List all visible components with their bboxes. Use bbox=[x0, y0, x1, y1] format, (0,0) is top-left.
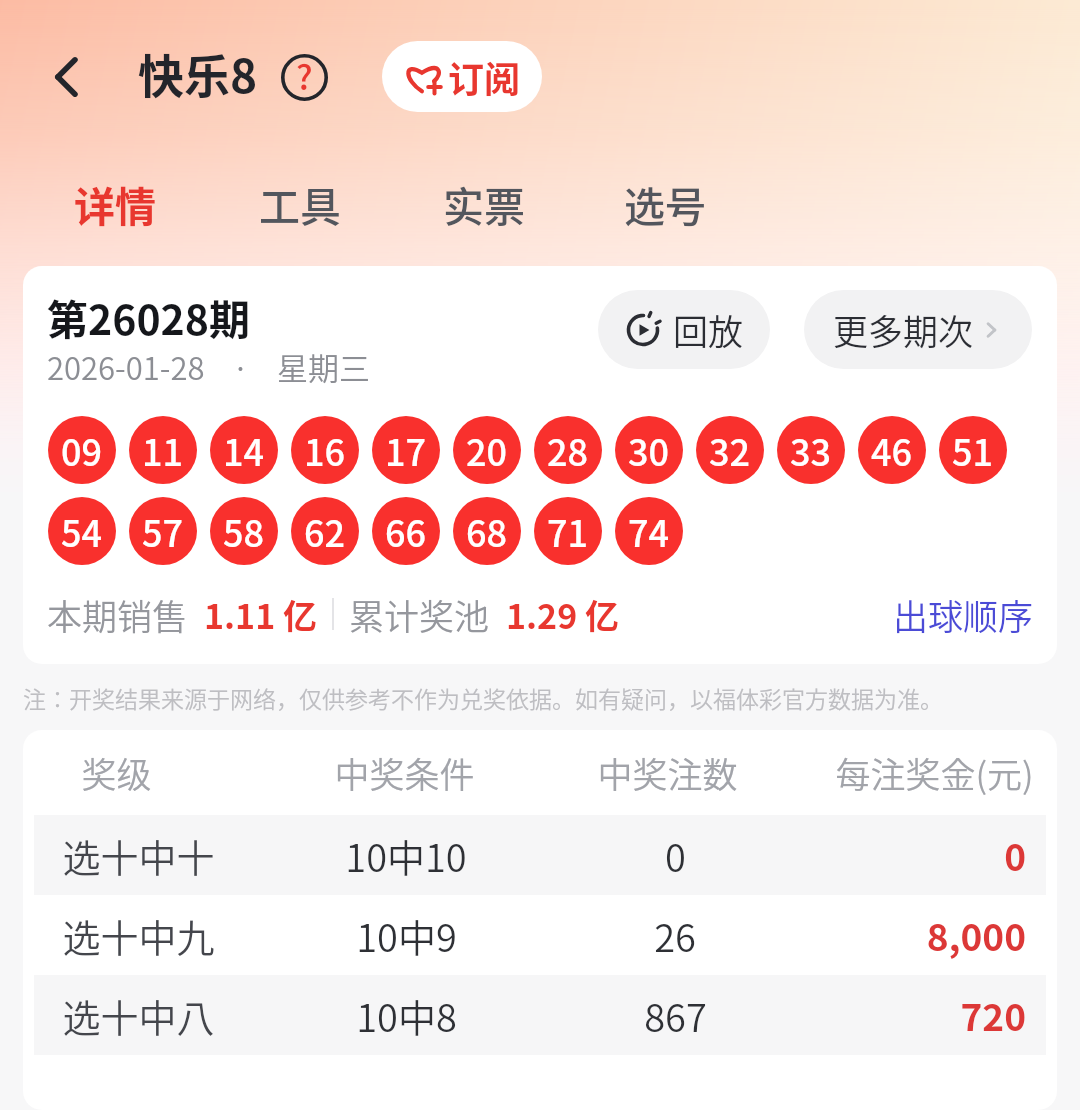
staticText: 09 bbox=[61, 424, 103, 476]
button[interactable]: 更多期次 bbox=[804, 290, 1032, 369]
staticText: 68 bbox=[466, 505, 508, 557]
staticText: 11 bbox=[142, 424, 184, 476]
staticText: 1.29 亿 bbox=[506, 590, 619, 639]
button[interactable]: 71 bbox=[534, 497, 602, 565]
button[interactable]: 54 bbox=[48, 497, 116, 565]
staticText: 57 bbox=[142, 505, 184, 557]
staticText: 66 bbox=[385, 505, 427, 557]
button[interactable]: 工具 bbox=[236, 163, 364, 243]
staticText: 选十中十 bbox=[62, 828, 215, 883]
staticText: 32 bbox=[709, 424, 751, 476]
button[interactable]: 14 bbox=[210, 416, 278, 484]
staticText: 0 bbox=[665, 828, 686, 883]
staticText: 工具 bbox=[259, 174, 341, 233]
button[interactable]: 选十中九 bbox=[34, 895, 1046, 975]
staticText: ? bbox=[296, 51, 313, 100]
staticText: 本期销售 bbox=[47, 589, 188, 640]
button[interactable]: 57 bbox=[129, 497, 197, 565]
button[interactable]: 46 bbox=[858, 416, 926, 484]
button[interactable]: 回放 bbox=[598, 290, 770, 369]
button[interactable]: 51 bbox=[939, 416, 1007, 484]
staticText: 中奖注数 bbox=[597, 747, 738, 798]
staticText: 46 bbox=[871, 424, 913, 476]
staticText: 26 bbox=[654, 908, 696, 963]
staticText: 28 bbox=[547, 424, 589, 476]
staticText: 中奖条件 bbox=[334, 747, 475, 798]
button[interactable]: 30 bbox=[615, 416, 683, 484]
button[interactable]: 62 bbox=[291, 497, 359, 565]
staticText: 回放 bbox=[673, 304, 744, 355]
staticText: 8,000 bbox=[926, 908, 1026, 962]
staticText: 实票 bbox=[443, 174, 525, 233]
staticText: 33 bbox=[790, 424, 832, 476]
staticText: 第26028期 bbox=[47, 287, 250, 346]
staticText: 71 bbox=[547, 505, 589, 557]
staticText: 51 bbox=[952, 424, 994, 476]
staticText: 累计奖池 bbox=[349, 589, 490, 640]
staticText: 订阅 bbox=[448, 51, 521, 103]
staticText: 720 bbox=[960, 988, 1026, 1042]
button[interactable]: 68 bbox=[453, 497, 521, 565]
staticText: 30 bbox=[628, 424, 670, 476]
button[interactable]: 详情 bbox=[51, 163, 179, 243]
staticText: 更多期次 bbox=[833, 304, 974, 355]
staticText: 58 bbox=[223, 505, 265, 557]
button[interactable]: 选十中八 bbox=[34, 975, 1046, 1055]
button[interactable]: 33 bbox=[777, 416, 845, 484]
staticText: 出球顺序 bbox=[893, 589, 1034, 640]
staticText: 选十中九 bbox=[62, 908, 215, 963]
button[interactable]: 17 bbox=[372, 416, 440, 484]
button[interactable]: 32 bbox=[696, 416, 764, 484]
button[interactable]: 选十中十 bbox=[34, 815, 1046, 895]
staticText: 10中9 bbox=[356, 908, 457, 963]
staticText: 选号 bbox=[624, 174, 706, 233]
staticText: 选十中八 bbox=[62, 988, 215, 1043]
button[interactable]: 出球顺序 bbox=[893, 589, 1034, 640]
button[interactable]: 66 bbox=[372, 497, 440, 565]
staticText: 奖级 bbox=[81, 747, 152, 798]
staticText: 1.11 亿 bbox=[204, 590, 317, 639]
staticText: 10中8 bbox=[356, 988, 457, 1043]
staticText: 16 bbox=[304, 424, 346, 476]
button[interactable]: 58 bbox=[210, 497, 278, 565]
button[interactable]: 28 bbox=[534, 416, 602, 484]
staticText: 20 bbox=[466, 424, 508, 476]
staticText: 详情 bbox=[74, 174, 156, 233]
button[interactable]: 11 bbox=[129, 416, 197, 484]
button[interactable]: 74 bbox=[615, 497, 683, 565]
button[interactable]: 16 bbox=[291, 416, 359, 484]
staticText: 17 bbox=[385, 424, 427, 476]
staticText: 74 bbox=[628, 505, 670, 557]
staticText: 62 bbox=[304, 505, 346, 557]
button[interactable]: 09 bbox=[48, 416, 116, 484]
staticText: 867 bbox=[644, 988, 707, 1043]
staticText: 每注奖金(元) bbox=[835, 747, 1034, 798]
staticText: 0 bbox=[1004, 828, 1026, 882]
button[interactable]: Help bbox=[277, 50, 332, 105]
button[interactable]: Back bbox=[37, 47, 97, 107]
staticText: 10中10 bbox=[345, 828, 467, 883]
staticText: 注：开奖结果来源于网络，仅供参考不作为兑奖依据。如有疑问，以福体彩官方数据为准。 bbox=[23, 681, 943, 714]
button[interactable]: 选号 bbox=[601, 163, 729, 243]
button[interactable]: 订阅 bbox=[382, 41, 542, 112]
staticText: 54 bbox=[61, 505, 103, 557]
staticText: 2026-01-28 · 星期三 bbox=[47, 344, 370, 389]
staticText: 快乐8 bbox=[138, 40, 258, 107]
staticText: 14 bbox=[223, 424, 265, 476]
button[interactable]: 实票 bbox=[420, 163, 548, 243]
button[interactable]: 20 bbox=[453, 416, 521, 484]
